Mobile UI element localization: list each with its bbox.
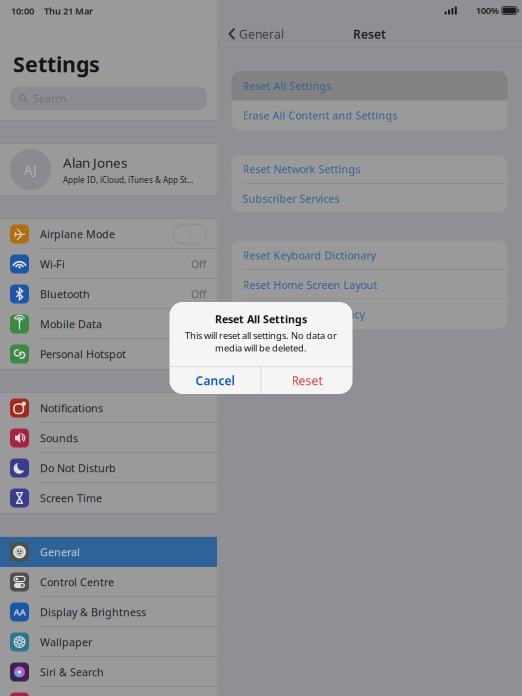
staticText: Do Not Disturb [40,461,116,475]
button[interactable]: AA [0,597,217,627]
button[interactable]: Airplane Mode [0,219,217,249]
button[interactable]: Personal Hotspot [0,339,217,369]
staticText: Control Centre [40,575,114,589]
button[interactable]: Reset Keyboard Dictionary [231,240,507,270]
staticText: Reset All Settings [215,312,307,326]
button[interactable]: Notifications [0,393,217,423]
button[interactable]: Subscriber Services [231,184,507,213]
staticText: Reset All Settings [242,79,331,93]
staticText: Thu 21 Mar [44,5,93,17]
button[interactable]: Touch ID & Passcode [0,687,217,696]
staticText: Off [191,257,206,271]
button[interactable]: General [0,537,217,567]
staticText: Notifications [40,401,103,415]
staticText: AA [13,606,25,618]
button[interactable]: General [217,22,284,46]
staticText: Reset [291,372,322,388]
staticText: Wi-Fi [40,257,65,271]
staticText: Reset Home Screen Layout [242,278,377,292]
staticText: Mobile Data [40,317,102,331]
staticText: Personal Hotspot [40,347,126,361]
staticText: General [40,545,80,559]
button[interactable]: Wallpaper [0,627,217,657]
staticText: Erase All Content and Settings [242,108,397,122]
staticText: Cancel [195,372,234,388]
button[interactable]: Erase All Content and Settings [231,100,507,130]
button[interactable]: Reset Location & Privacy [231,299,507,329]
staticText: 100% [476,4,499,17]
button[interactable]: Mobile Data [0,309,217,339]
button[interactable]: AJ [0,144,217,195]
button[interactable]: Screen Time [0,483,217,513]
button[interactable]: Sounds [0,423,217,453]
staticText: 10:00 [11,5,34,17]
staticText: Sounds [40,431,78,445]
staticText: AJ [24,161,37,178]
staticText: This will reset all settings. No data or [185,329,337,342]
button[interactable]: Wi-Fi [0,249,217,279]
staticText: Reset [353,26,386,42]
staticText: Siri & Search [40,665,104,679]
staticText: Reset Location & Privacy [242,307,364,321]
staticText: Alan Jones [63,154,127,171]
staticText: Search [33,91,67,106]
button[interactable]: Control Centre [0,567,217,597]
button[interactable]: Reset All Settings [231,71,507,100]
staticText: Reset Network Settings [242,162,360,176]
staticText: Wallpaper [40,635,92,649]
staticText: Subscriber Services [242,191,339,206]
button[interactable]: Reset [261,367,352,394]
staticText: Bluetooth [40,287,90,301]
button[interactable]: Reset Network Settings [231,154,507,184]
button[interactable]: Cancel [169,367,260,394]
staticText: General [239,26,284,42]
button[interactable]: Reset Home Screen Layout [231,270,507,299]
staticText: Apple ID, iCloud, iTunes & App St… [63,174,193,185]
button[interactable]: Do Not Disturb [0,453,217,483]
staticText: Off [191,287,206,301]
staticText: Display & Brightness [40,605,146,619]
staticText: media will be deleted. [215,342,307,354]
staticText: Airplane Mode [40,227,115,241]
button[interactable]: Siri & Search [0,657,217,687]
staticText: Screen Time [40,491,102,505]
staticText: Settings [13,50,100,78]
staticText: Reset Keyboard Dictionary [242,248,375,262]
button[interactable]: Bluetooth [0,279,217,309]
